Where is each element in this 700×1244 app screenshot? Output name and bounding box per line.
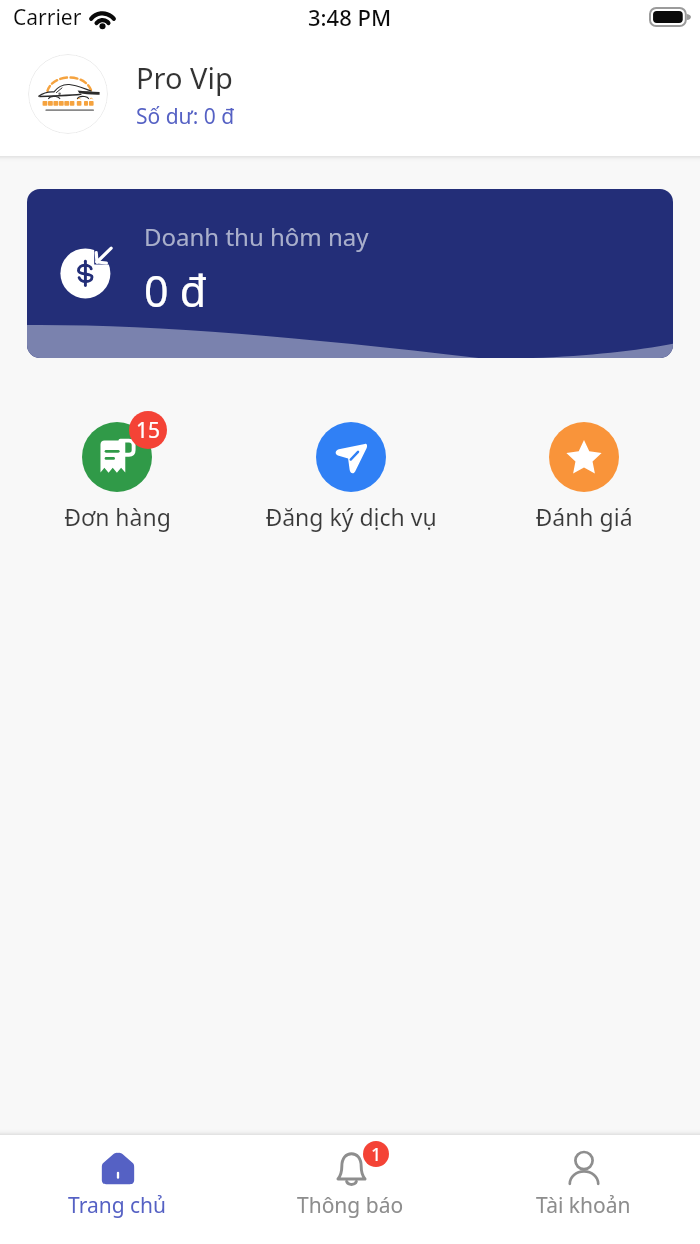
button[interactable]: Doanh thu hôm nay — [27, 189, 673, 358]
button[interactable]: Tài khoản — [518, 1141, 649, 1220]
staticText: Thông báo — [297, 1191, 404, 1220]
button[interactable]: Đăng ký dịch vụ — [259, 422, 443, 532]
staticText: 1 — [371, 1142, 382, 1167]
staticText: Số dư: 0 đ — [136, 102, 235, 131]
staticText: 15 — [136, 416, 161, 445]
button[interactable]: 15 — [49, 422, 185, 532]
staticText: Đăng ký dịch vụ — [265, 501, 437, 532]
staticText: Carrier — [13, 3, 82, 32]
staticText: Đánh giá — [535, 501, 633, 532]
staticText: 0 đ — [144, 261, 207, 320]
button[interactable]: Đánh giá — [516, 422, 652, 532]
staticText: Trang chủ — [68, 1191, 167, 1220]
staticText: Tài khoản — [536, 1191, 631, 1220]
staticText: Doanh thu hôm nay — [144, 220, 369, 253]
staticText: Pro Vip — [136, 58, 233, 97]
other: Garage Ô Tô logo — [28, 54, 108, 134]
button[interactable]: 1 — [279, 1141, 422, 1220]
staticText: 3:48 PM — [308, 2, 392, 32]
staticText: Đơn hàng — [64, 501, 171, 532]
button[interactable]: Garage Ô Tô logo — [0, 44, 700, 156]
button[interactable]: Trang chủ — [50, 1141, 185, 1220]
